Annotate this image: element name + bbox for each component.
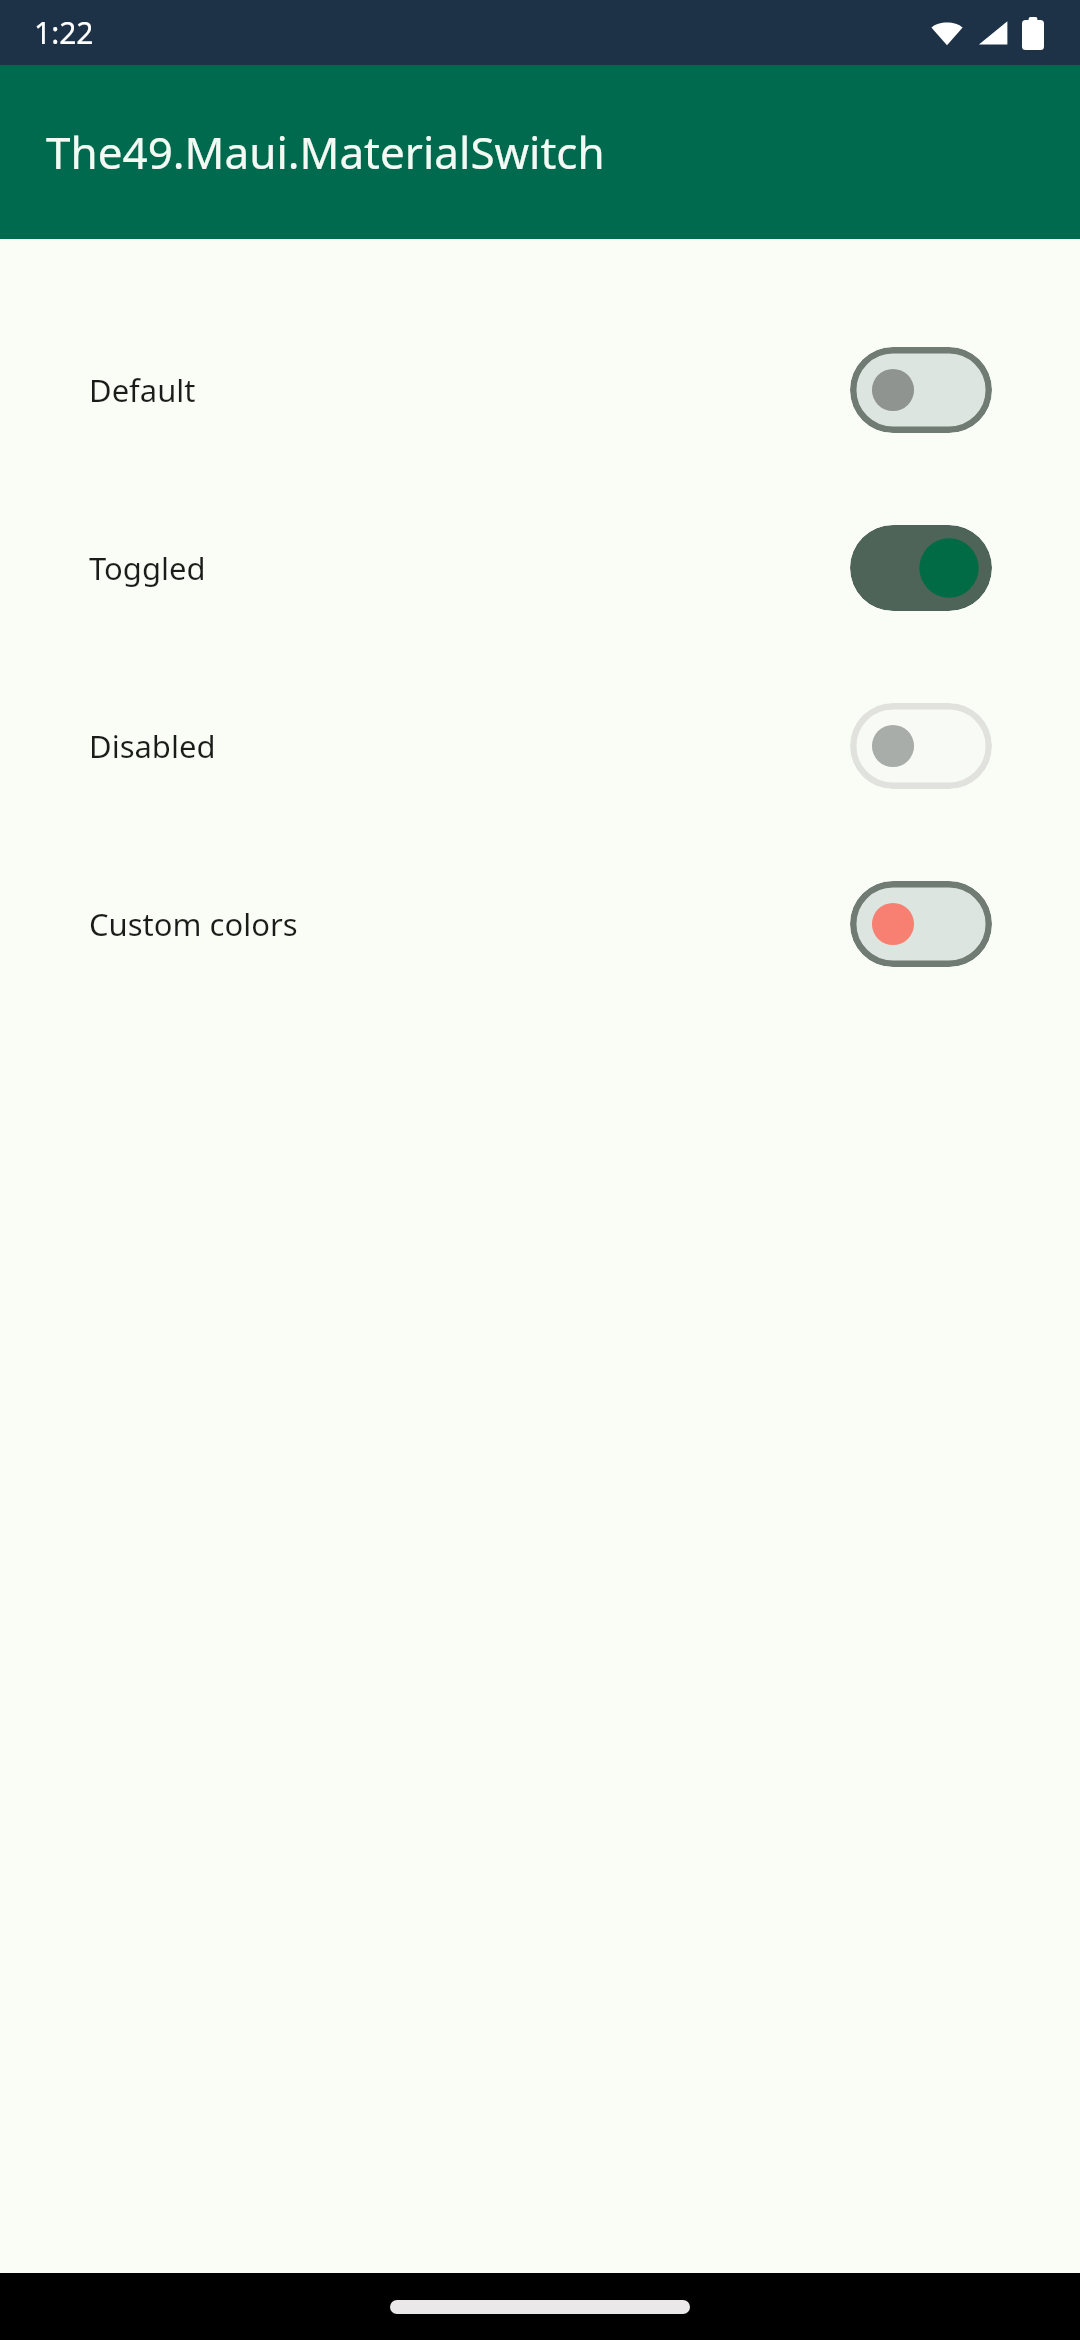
button[interactable]: Default switch, off: [850, 347, 992, 433]
staticText: The49.Maui.MaterialSwitch: [46, 122, 605, 182]
button: Disabled switch, off: [850, 703, 992, 789]
button[interactable]: Disabled: [0, 657, 1080, 835]
button[interactable]: Custom colors switch, off: [850, 881, 992, 967]
staticText: Toggled: [89, 547, 206, 589]
button[interactable]: Toggled: [0, 479, 1080, 657]
staticText: Default: [89, 369, 196, 411]
button[interactable]: Toggled switch, on: [850, 525, 992, 611]
button[interactable]: Default: [0, 301, 1080, 479]
button[interactable]: Custom colors: [0, 835, 1080, 1013]
staticText: Custom colors: [89, 903, 298, 945]
staticText: 1:22: [34, 12, 94, 53]
staticText: Disabled: [89, 725, 216, 767]
